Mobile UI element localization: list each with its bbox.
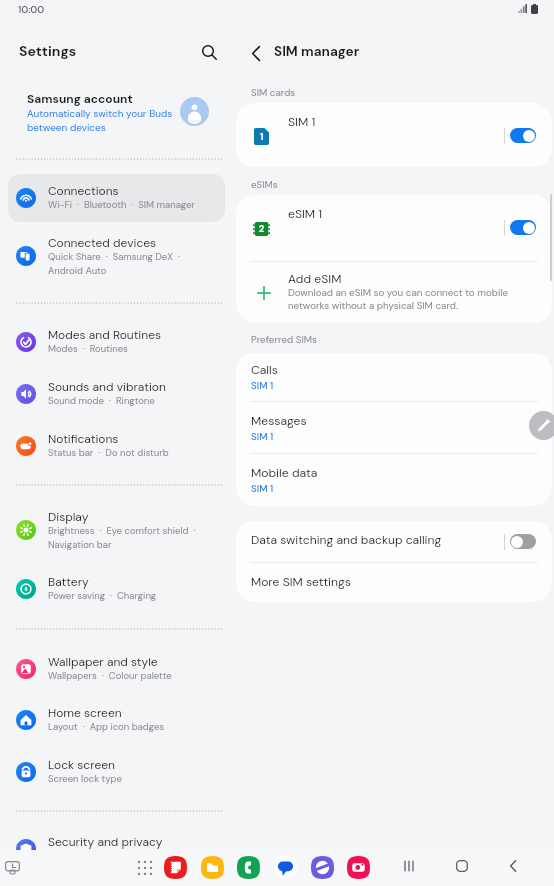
staticText: SIM 1 <box>251 379 274 392</box>
staticText: 10:00 <box>18 3 45 16</box>
button[interactable]: Toggle <box>510 128 536 143</box>
staticText: Sound mode · Ringtone <box>48 395 155 407</box>
button[interactable]: Sounds and vibration <box>8 370 225 418</box>
button[interactable]: Add eSIM <box>236 262 552 323</box>
staticText: Screen lock type <box>48 773 122 785</box>
button[interactable]: Display <box>8 500 225 560</box>
staticText: Add eSIM <box>288 271 342 287</box>
staticText: Home screen <box>48 705 122 721</box>
staticText: Quick Share · Samsung DeX · Android Auto <box>48 251 180 277</box>
button[interactable]: note <box>164 856 187 879</box>
staticText: Power saving · Charging <box>48 590 157 602</box>
staticText: Status bar · Do not disturb <box>48 447 169 459</box>
staticText: Settings <box>19 42 77 60</box>
button[interactable]: Home screen <box>8 696 225 744</box>
staticText: Lock screen <box>48 757 115 773</box>
button[interactable]: folder <box>201 856 224 879</box>
button[interactable]: chat <box>274 856 297 879</box>
button[interactable]: cam <box>347 856 370 879</box>
staticText: Sounds and vibration <box>48 379 166 395</box>
button[interactable]: Messages <box>236 404 552 454</box>
button[interactable]: Notifications <box>8 422 225 470</box>
staticText: Display <box>48 509 89 525</box>
button[interactable]: All apps <box>135 858 155 878</box>
button[interactable]: Connections <box>8 174 225 222</box>
button[interactable]: Modes and Routines <box>8 318 225 366</box>
staticText: Connected devices <box>48 235 157 251</box>
staticText: eSIM 1 <box>288 206 323 222</box>
button[interactable]: Battery <box>8 565 225 613</box>
staticText: Samsung account <box>27 91 133 107</box>
button[interactable]: Connected devices <box>8 226 225 286</box>
staticText: Wallpapers · Colour palette <box>48 670 172 682</box>
staticText: Security and privacy <box>48 834 163 850</box>
staticText: Wi-Fi · Bluetooth · SIM manager <box>48 199 195 211</box>
staticText: SIM cards <box>251 86 296 99</box>
button[interactable]: Edit <box>529 411 554 440</box>
staticText: Messages <box>251 413 307 429</box>
button[interactable]: Lock screen <box>8 748 225 796</box>
staticText: Preferred SIMs <box>251 333 317 346</box>
button[interactable]: recents <box>399 856 419 876</box>
staticText: Modes and Routines <box>48 327 161 343</box>
staticText: 2 <box>259 223 265 235</box>
button[interactable]: Wallpaper and style <box>8 645 225 693</box>
button[interactable]: Toggle <box>510 534 536 549</box>
button[interactable]: Mobile data <box>236 456 552 506</box>
button[interactable]: back <box>503 856 523 876</box>
staticText: Download an eSIM so you can connect to m… <box>288 286 509 312</box>
button[interactable]: Back <box>242 39 270 67</box>
button[interactable]: home <box>452 856 472 876</box>
button[interactable]: Samsung account <box>0 84 233 146</box>
staticText: Connections <box>48 183 119 199</box>
staticText: Wallpaper and style <box>48 654 158 670</box>
staticText: SIM 1 <box>251 430 274 443</box>
button[interactable]: phone <box>237 856 260 879</box>
staticText: eSIMs <box>251 178 278 191</box>
button[interactable]: Toggle <box>510 220 536 235</box>
staticText: Brightness · Eye comfort shield · Naviga… <box>48 525 196 551</box>
staticText: Data switching and backup calling <box>251 532 442 548</box>
staticText: Mobile data <box>251 465 318 481</box>
staticText: Calls <box>251 362 278 378</box>
staticText: SIM manager <box>274 43 360 61</box>
staticText: SIM 1 <box>251 482 274 495</box>
staticText: More SIM settings <box>251 574 351 590</box>
button[interactable]: Calls <box>236 353 552 403</box>
staticText: SIM 1 <box>288 114 316 130</box>
staticText: Battery <box>48 574 89 590</box>
button[interactable]: browser <box>311 856 334 879</box>
staticText: Notifications <box>48 431 119 447</box>
button[interactable]: Taskbar <box>2 857 22 877</box>
staticText: Layout · App icon badges <box>48 721 165 733</box>
staticText: 1 <box>260 130 264 143</box>
button[interactable]: Data switching and backup calling <box>236 521 552 562</box>
button[interactable]: More SIM settings <box>236 563 552 602</box>
button[interactable]: Search <box>194 37 224 67</box>
staticText: Automatically switch your Buds between d… <box>27 107 173 134</box>
button[interactable]: Security and privacy <box>8 825 225 873</box>
staticText: Modes · Routines <box>48 343 128 355</box>
